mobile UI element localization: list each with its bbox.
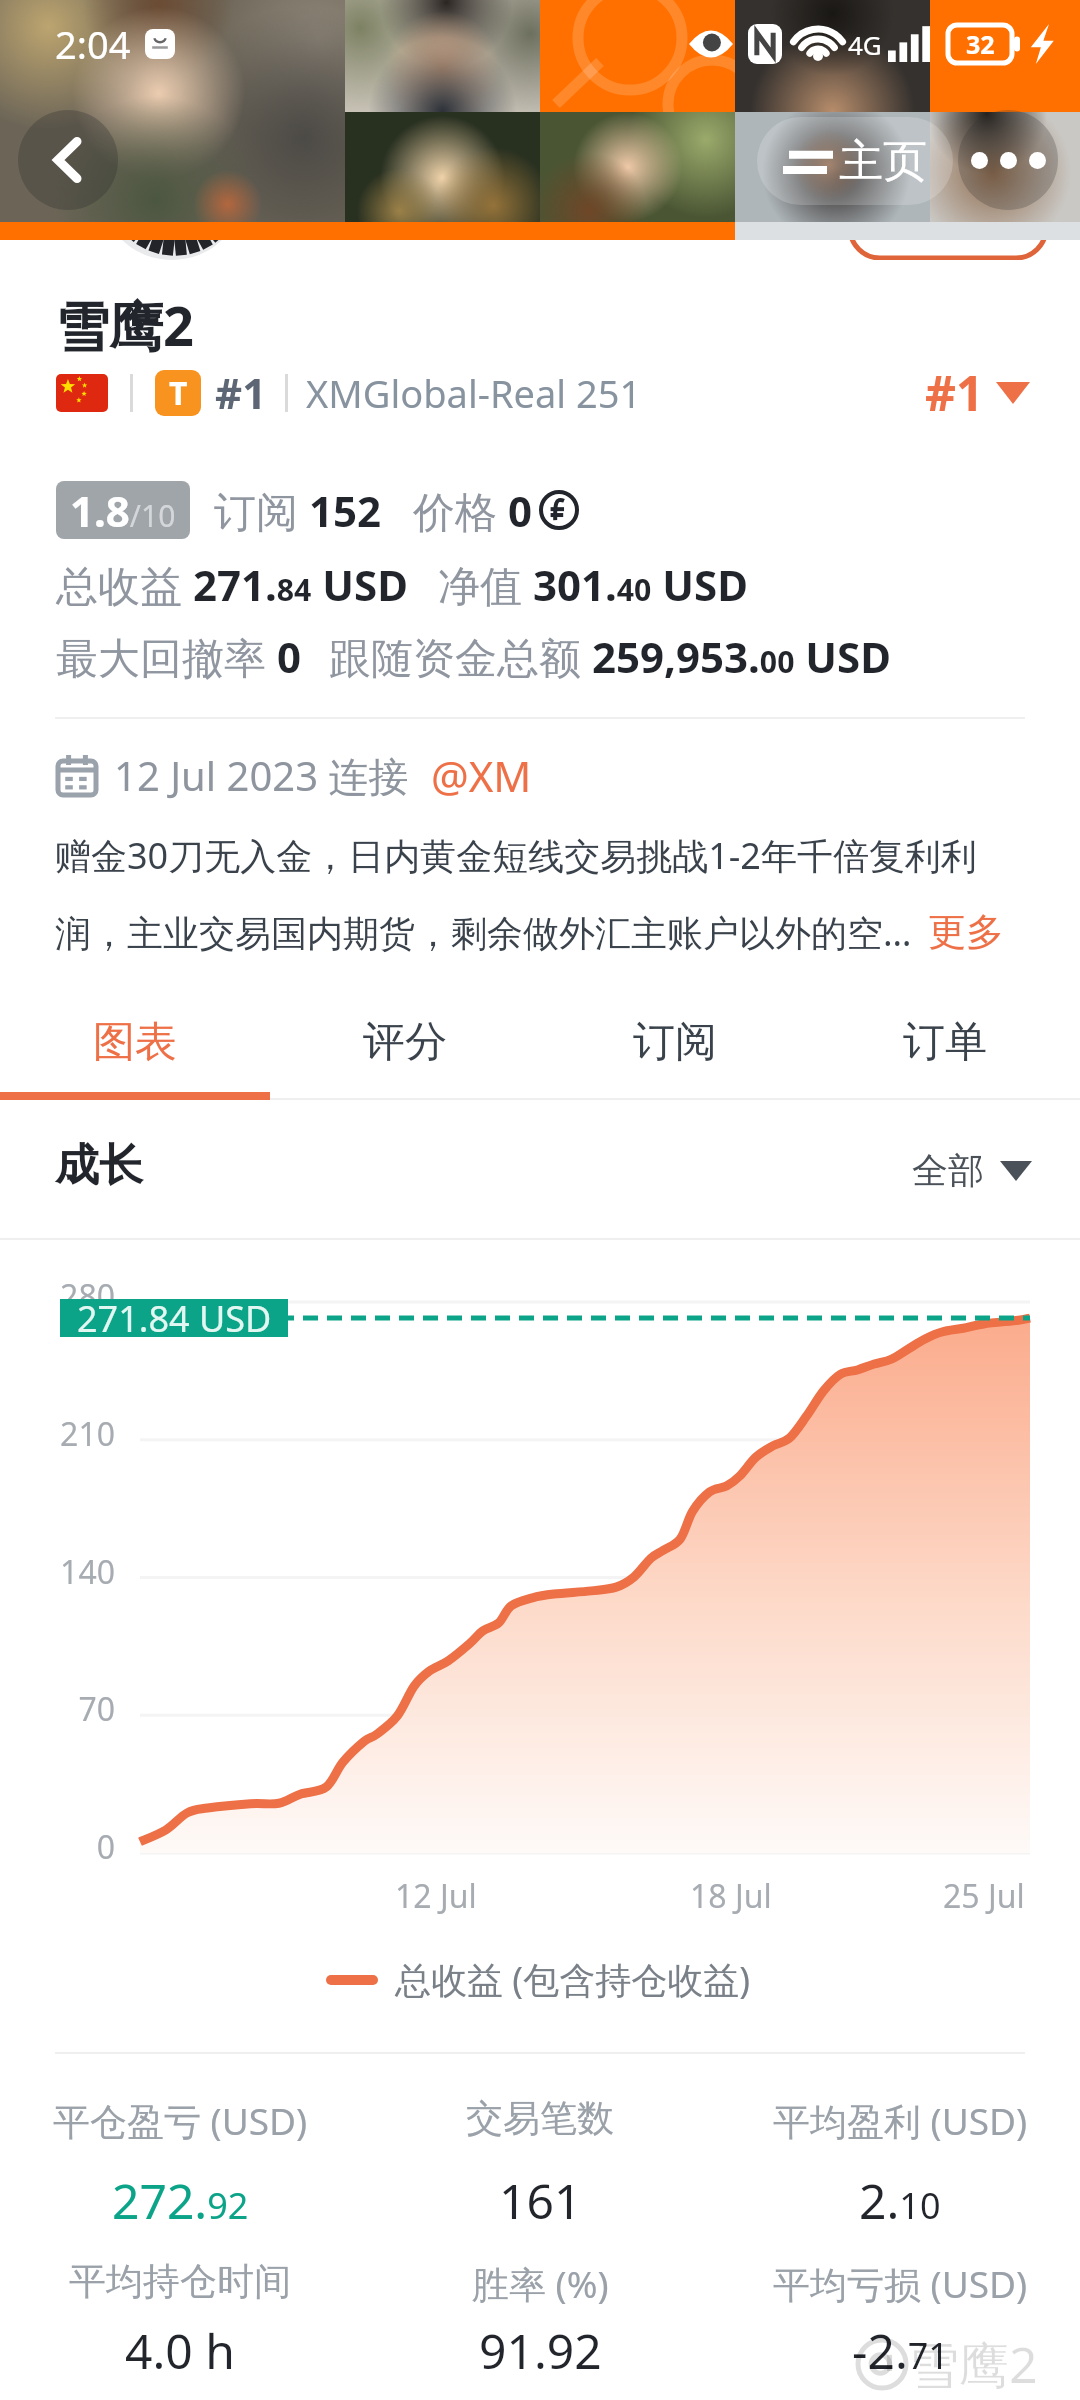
staticText: 订阅 [633, 1016, 717, 1069]
staticText: 赠金30刀无入金，日内黄金短线交易挑战1-2年千倍复利利 [55, 831, 977, 880]
staticText: 2:04 [55, 18, 131, 70]
staticText: -2.71 [852, 2318, 949, 2383]
staticText: #1 [215, 364, 267, 421]
button[interactable]: @XM [431, 747, 532, 804]
staticText: 总收益 (包含持仓收益) [395, 1955, 750, 2004]
staticText: 91.92 [479, 2318, 602, 2383]
staticText: 主页 [839, 134, 927, 189]
staticText: 平均亏损 (USD) [773, 2258, 1028, 2309]
staticText: 12 Jul 2023 连接 [114, 748, 409, 803]
staticText: 净值 301.40 USD [438, 556, 748, 613]
staticText: 成长 [55, 1138, 143, 1193]
staticText: 雪鹰2 [909, 2330, 1038, 2398]
staticText: T [169, 371, 188, 415]
staticText: 全部 [912, 1148, 984, 1193]
button[interactable]: 图表 [0, 985, 270, 1100]
button[interactable]: 雪鹰2 [855, 2330, 1038, 2398]
staticText: 271.84 USD [77, 1294, 272, 1343]
staticText: 润，主业交易国内期货，剩余做外汇主账户以外的空… [55, 908, 912, 957]
staticText: 32 [966, 27, 995, 61]
staticText: 140 [30, 1550, 115, 1594]
button[interactable]: 全部 [912, 1148, 1032, 1193]
staticText: 70 [30, 1687, 115, 1731]
staticText: 跟随资金总额 259,953.00 USD [329, 628, 891, 685]
staticText: 总收益 271.84 USD [56, 556, 408, 613]
staticText: #1 [925, 360, 984, 425]
button[interactable]: 订单 [810, 985, 1080, 1100]
staticText: 0 [30, 1825, 115, 1869]
button[interactable] [848, 178, 1048, 260]
staticText: 交易笔数 [466, 2095, 614, 2142]
staticText: 210 [30, 1412, 115, 1456]
staticText: 评分 [363, 1016, 447, 1069]
staticText: 平均盈利 (USD) [773, 2095, 1028, 2146]
staticText: 272.92 [112, 2168, 249, 2233]
staticText: 4G [848, 27, 882, 62]
staticText: 胜率 (%) [472, 2258, 609, 2309]
button[interactable]: More options [958, 110, 1058, 210]
button[interactable]: #1 [925, 360, 1030, 425]
staticText: 280 [30, 1274, 115, 1318]
staticText: 161 [499, 2168, 582, 2233]
staticText: 18 Jul [690, 1874, 772, 1918]
button[interactable]: 订阅 [540, 985, 810, 1100]
staticText: 雪鹰2 [55, 288, 194, 362]
staticText: 价格 0 [413, 482, 532, 539]
staticText: 平仓盈亏 (USD) [53, 2095, 308, 2146]
staticText: 1.8/10 [70, 482, 176, 539]
button[interactable]: 更多 [928, 908, 1004, 956]
staticText: 25 Jul [943, 1874, 1025, 1918]
staticText: XMGlobal-Real 251 [306, 367, 642, 419]
staticText: 最大回撤率 0 [56, 628, 301, 685]
button[interactable]: Back [18, 110, 118, 210]
staticText: 12 Jul [395, 1874, 477, 1918]
staticText: 平均持仓时间 [69, 2258, 291, 2305]
staticText: 订单 [903, 1016, 987, 1069]
staticText: 2.10 [859, 2168, 941, 2233]
button[interactable]: 评分 [270, 985, 540, 1100]
staticText: 订阅 152 [214, 482, 381, 539]
staticText: 4.0 h [125, 2318, 235, 2383]
staticText: 图表 [93, 1016, 177, 1069]
button[interactable]: 主页 [757, 117, 953, 205]
